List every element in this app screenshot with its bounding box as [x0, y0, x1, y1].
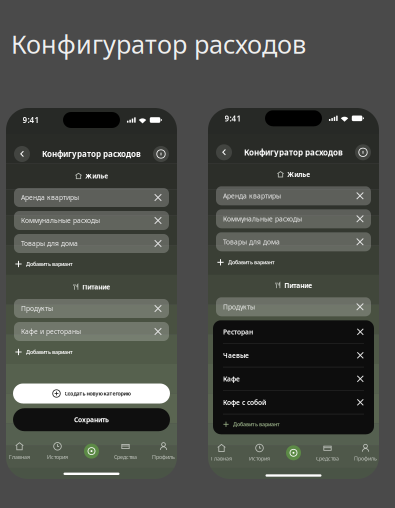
staticText: Средства [316, 455, 339, 462]
staticText: Главная [9, 453, 30, 460]
staticText: Жилье [85, 172, 108, 180]
button[interactable]: История [42, 441, 72, 462]
staticText: Аренда квартиры [223, 191, 281, 200]
button[interactable]: Добавить вариант [217, 256, 370, 268]
staticText: Кафе и рестораны [21, 327, 81, 336]
staticText: История [47, 453, 68, 460]
staticText: 9:41 [22, 115, 39, 125]
staticText: Профиль [354, 455, 377, 462]
staticText: Добавить вариант [228, 259, 275, 266]
staticText: Коммунальные расходы [21, 216, 100, 225]
staticText: История [249, 455, 270, 462]
button[interactable]: Средства [110, 441, 140, 462]
button[interactable]: Кафе [213, 367, 374, 390]
staticText: Сохранить [74, 415, 109, 424]
staticText: 9:41 [224, 113, 241, 124]
button[interactable]: Информация [354, 143, 372, 161]
button[interactable]: Сохранить [13, 408, 170, 431]
staticText: Конфигуратор расходов [244, 147, 343, 158]
staticText: Товары для дома [223, 237, 280, 246]
staticText: Продукты [223, 302, 255, 311]
button[interactable]: Продукты [216, 297, 371, 316]
button[interactable]: Главная [4, 441, 34, 462]
staticText: Конфигуратор расходов [42, 149, 141, 159]
button[interactable]: Чаевые [213, 344, 374, 367]
button[interactable]: Добавить вариант [15, 346, 168, 358]
staticText: Коммунальные расходы [223, 214, 302, 223]
button[interactable]: Кафе и рестораны [14, 322, 169, 341]
button[interactable]: Добавить расход [282, 442, 304, 464]
button[interactable]: Создать новую категорию [13, 383, 170, 403]
staticText: Жилье [287, 170, 310, 179]
staticText: Кофе с собой [223, 398, 266, 407]
staticText: Чаевые [223, 351, 249, 360]
button[interactable]: Информация [152, 145, 170, 163]
staticText: Питание [284, 281, 312, 290]
button[interactable]: Коммунальные расходы [14, 211, 169, 230]
button[interactable]: Коммунальные расходы [216, 209, 371, 228]
button[interactable]: Добавить вариант [213, 414, 374, 434]
button[interactable]: Товары для дома [216, 232, 371, 251]
button[interactable]: Кофе с собой [213, 391, 374, 414]
staticText: Кафе [223, 374, 240, 383]
staticText: Добавить вариант [233, 421, 280, 428]
staticText: Аренда квартиры [21, 193, 79, 202]
button[interactable]: Продукты [14, 299, 169, 318]
staticText: Питание [82, 283, 110, 291]
button[interactable]: Главная [206, 442, 236, 463]
staticText: Товары для дома [21, 239, 78, 248]
button[interactable]: Товары для дома [14, 234, 169, 253]
staticText: Ресторан [223, 327, 253, 336]
button[interactable]: Добавить вариант [15, 258, 168, 270]
button[interactable]: Профиль [148, 441, 178, 462]
staticText: Средства [114, 453, 137, 460]
button[interactable]: Аренда квартиры [14, 188, 169, 207]
staticText: Профиль [152, 453, 175, 460]
staticText: Конфигуратор расходов [11, 27, 306, 61]
button[interactable]: Профиль [350, 442, 380, 463]
staticText: Добавить вариант [26, 348, 73, 356]
button[interactable]: Добавить расход [80, 440, 102, 462]
button[interactable]: Ресторан [213, 320, 374, 343]
button[interactable]: История [244, 442, 274, 463]
staticText: Добавить вариант [26, 260, 73, 268]
button[interactable]: Аренда квартиры [216, 186, 371, 205]
staticText: Создать новую категорию [64, 390, 130, 397]
button[interactable]: Назад [13, 145, 31, 163]
button[interactable]: Назад [215, 143, 233, 161]
staticText: Главная [211, 455, 232, 462]
staticText: Продукты [21, 304, 53, 313]
button[interactable]: Средства [312, 442, 342, 463]
